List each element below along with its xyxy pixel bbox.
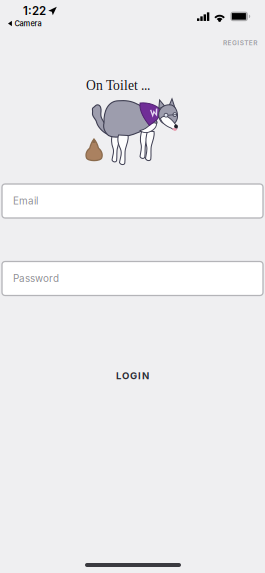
staticText: Email: [13, 195, 38, 207]
staticText: Password: [13, 272, 59, 284]
staticText: LOGIN: [116, 370, 152, 382]
button[interactable]: LOGIN: [98, 361, 170, 391]
staticText: On Toilet ...: [86, 78, 150, 93]
button[interactable]: Camera: [4, 17, 46, 30]
staticText: 1:22: [23, 4, 46, 18]
button[interactable]: REGISTER: [216, 32, 265, 54]
staticText: Camera: [15, 19, 42, 28]
staticText: REGISTER: [223, 39, 260, 47]
